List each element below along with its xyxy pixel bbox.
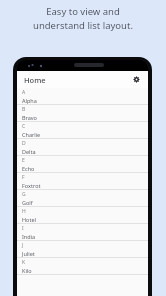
staticText: I [22,225,24,232]
staticText: J [22,242,24,249]
staticText: Alpha [22,97,37,104]
staticText: F [22,174,25,181]
button[interactable]: J [17,241,148,258]
staticText: G [22,191,26,198]
staticText: E [22,157,25,164]
staticText: Juliet [22,250,35,257]
button[interactable]: I [17,224,148,241]
button[interactable]: E [17,156,148,173]
button[interactable]: K [17,258,148,275]
staticText: Bravo [22,114,37,121]
staticText: Delta [22,148,36,155]
staticText: B [22,106,26,113]
button[interactable]: Settings [130,73,143,86]
staticText: K [22,259,26,266]
button[interactable]: G [17,190,148,207]
button[interactable]: B [17,105,148,122]
staticText: C [22,123,26,130]
staticText: understand list layout. [33,19,133,32]
staticText: Charlie [22,131,41,138]
staticText: A [22,89,26,96]
button[interactable]: D [17,139,148,156]
staticText: Home [24,75,46,85]
button[interactable]: F [17,173,148,190]
staticText: Golf [22,199,33,206]
staticText: H [22,208,26,215]
staticText: Hotel [22,216,36,223]
staticText: Echo [22,165,35,172]
button[interactable]: A [17,88,148,105]
staticText: Foxtrot [22,182,41,189]
staticText: Easy to view and [46,5,120,18]
button[interactable]: C [17,122,148,139]
staticText: India [22,233,36,240]
staticText: Kilo [22,267,32,274]
staticText: D [22,140,26,147]
button[interactable]: H [17,207,148,224]
